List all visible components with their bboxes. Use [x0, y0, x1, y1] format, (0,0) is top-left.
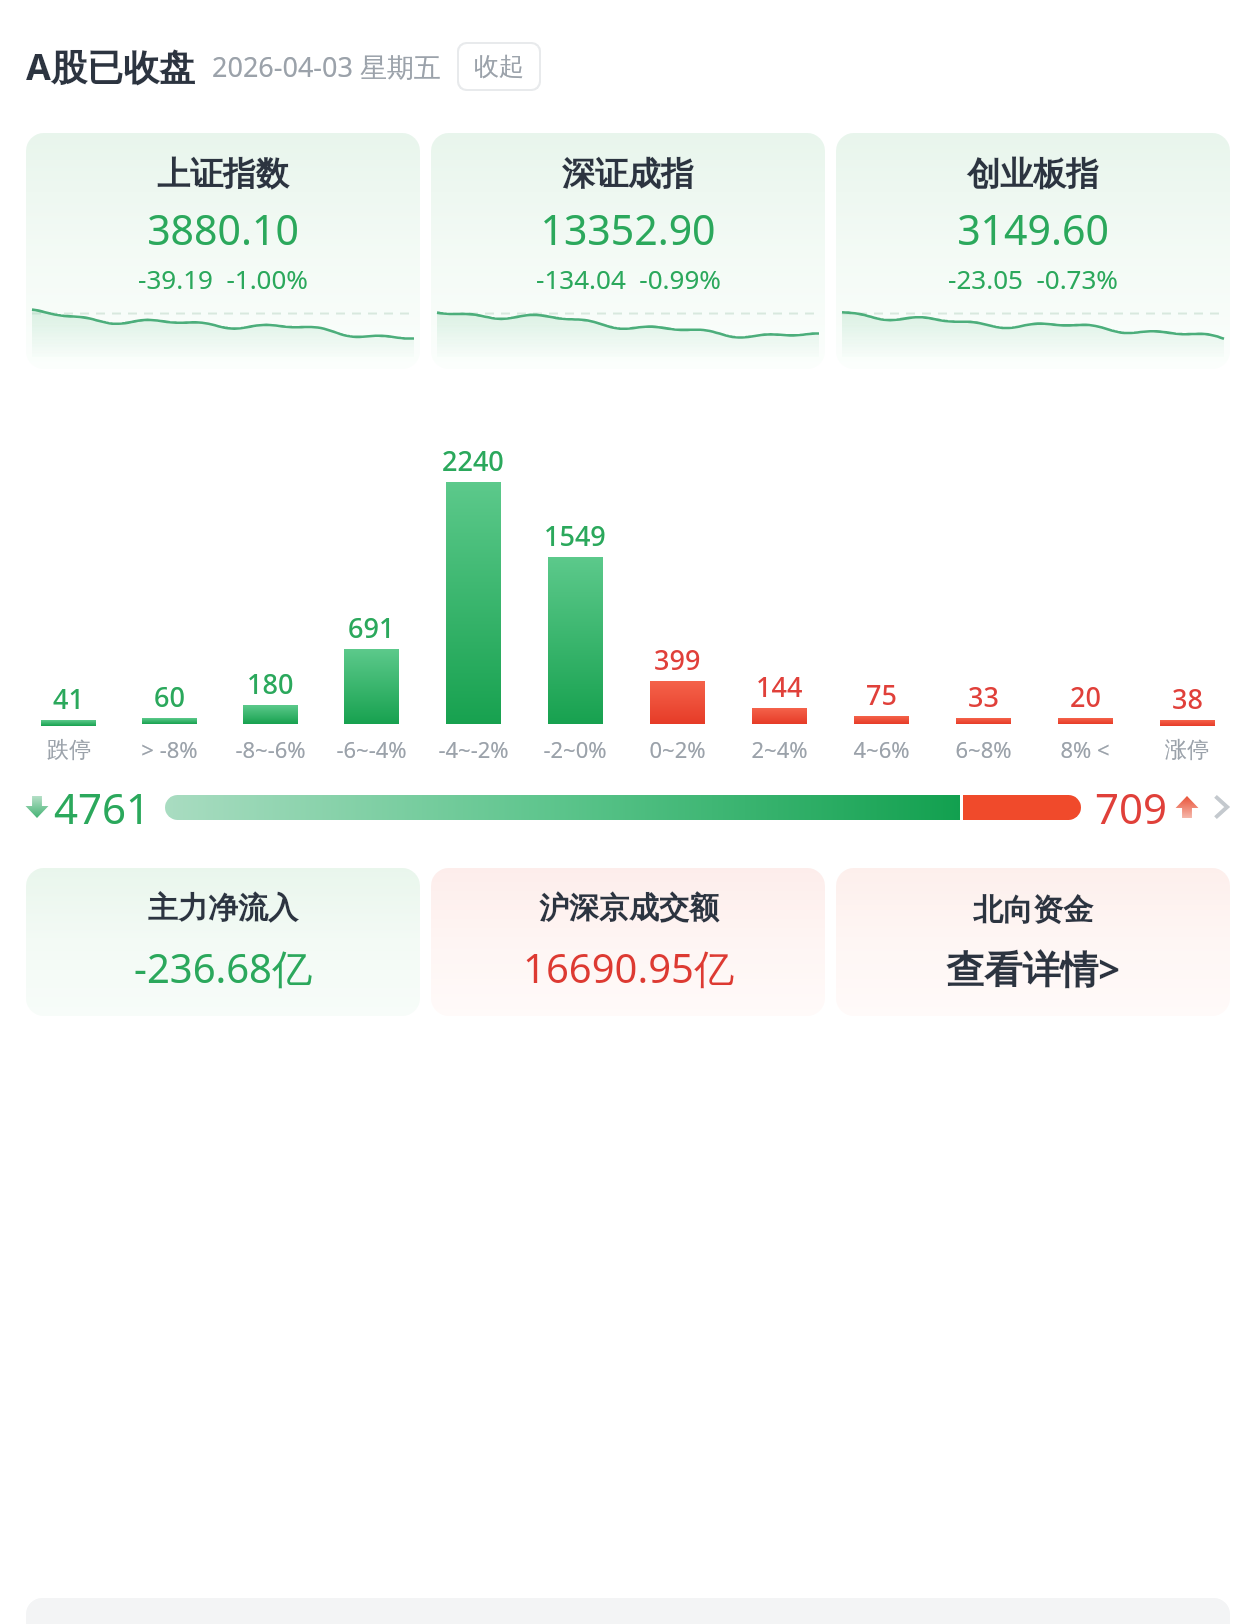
staticText: 4~6% [853, 734, 910, 764]
button[interactable]: 75 [830, 424, 932, 764]
other: 更多 [1210, 788, 1232, 826]
other: 上涨 [1174, 794, 1200, 820]
button[interactable]: 收起 [459, 44, 539, 89]
staticText: A股已收盘 [26, 42, 195, 91]
staticText: > -8% [141, 734, 198, 764]
button[interactable]: 2240 [422, 424, 524, 764]
staticText: 北向资金 [973, 891, 1093, 929]
button[interactable]: 38 [1136, 426, 1238, 764]
staticText: 4761 [54, 779, 151, 836]
staticText: 主力净流入 [148, 889, 298, 927]
staticText: 691 [348, 609, 395, 646]
staticText: 41 [53, 680, 84, 717]
staticText: 沪深京成交额 [539, 889, 719, 927]
button[interactable]: 1549 [524, 424, 626, 764]
staticText: -23.05 -0.73% [948, 261, 1118, 296]
staticText: 144 [756, 668, 803, 705]
staticText: 3880.10 [147, 201, 299, 257]
staticText: 709 [1095, 779, 1168, 836]
button[interactable]: 20 [1034, 424, 1136, 764]
staticText: -39.19 -1.00% [138, 261, 308, 296]
button[interactable]: 41 [18, 426, 119, 764]
button[interactable]: 33 [932, 424, 1034, 764]
staticText: -6~-4% [336, 734, 407, 764]
button[interactable]: 北向资金 [836, 868, 1230, 1016]
staticText: 2~4% [751, 734, 808, 764]
staticText: 38 [1172, 680, 1203, 717]
staticText: 180 [247, 665, 294, 702]
staticText: -134.04 -0.99% [536, 261, 721, 296]
button[interactable]: 上证指数 [26, 133, 420, 369]
button[interactable]: 沪深京成交额 [431, 868, 825, 1016]
staticText: 16690.95亿 [523, 940, 734, 995]
button[interactable]: 60 [119, 424, 220, 764]
button[interactable]: 691 [321, 424, 422, 764]
staticText: -8~-6% [235, 734, 306, 764]
staticText: 6~8% [955, 734, 1012, 764]
staticText: 0~2% [649, 734, 706, 764]
staticText: 33 [968, 678, 999, 715]
button[interactable]: 399 [626, 424, 728, 764]
staticText: -2~0% [543, 734, 607, 764]
staticText: 2026-04-03 星期五 [212, 48, 441, 85]
staticText: 75 [866, 676, 897, 713]
staticText: 上证指数 [157, 153, 289, 195]
button[interactable]: 创业板指 [836, 133, 1230, 369]
staticText: -4~-2% [438, 734, 509, 764]
staticText: 399 [654, 641, 701, 678]
staticText: 13352.90 [540, 201, 716, 257]
button[interactable]: 主力净流入 [26, 868, 420, 1016]
button[interactable]: 180 [220, 424, 321, 764]
staticText: 8% < [1060, 734, 1110, 764]
staticText: 查看详情> [946, 942, 1120, 994]
staticText: 跌停 [47, 736, 91, 764]
staticText: 20 [1070, 678, 1101, 715]
staticText: 3149.60 [957, 201, 1109, 257]
staticText: -236.68亿 [134, 940, 312, 995]
staticText: 创业板指 [967, 153, 1099, 195]
staticText: 收起 [474, 51, 524, 82]
button[interactable]: 下跌 [24, 772, 1232, 842]
staticText: 涨停 [1165, 736, 1209, 764]
staticText: 1549 [544, 517, 606, 554]
staticText: 2240 [442, 442, 504, 479]
staticText: 深证成指 [562, 153, 694, 195]
staticText: 60 [154, 678, 185, 715]
button[interactable]: 深证成指 [431, 133, 825, 369]
button[interactable]: 144 [728, 424, 830, 764]
other: 下跌 [24, 794, 50, 820]
